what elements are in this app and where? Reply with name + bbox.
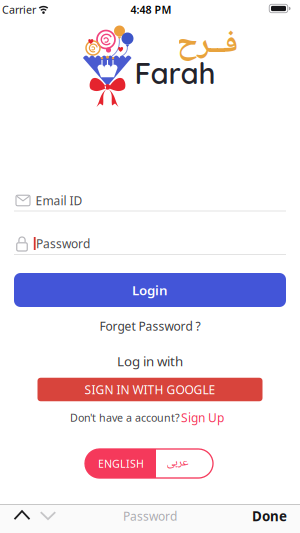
staticText: Password [123, 508, 177, 524]
staticText: Done [252, 507, 287, 525]
staticText: Login [132, 281, 168, 299]
staticText: ENGLISH [98, 456, 144, 471]
staticText: عربى [166, 453, 188, 473]
button[interactable]: Sign Up [181, 409, 224, 425]
staticText: 4:48 PM [130, 2, 171, 17]
staticText: Farah [134, 55, 215, 91]
staticText: Carrier [2, 2, 36, 17]
staticText: Forget Password ? [99, 318, 200, 334]
staticText: Don't have a account? [70, 410, 180, 425]
staticText: SIGN IN WITH GOOGLE [84, 381, 215, 397]
staticText: فــرح [176, 18, 238, 72]
staticText: Sign Up [181, 409, 224, 425]
button[interactable]: Login [14, 273, 286, 307]
staticText: Email ID [35, 192, 82, 208]
staticText: Password [36, 235, 90, 251]
button[interactable]: ENGLISH [85, 449, 213, 478]
button[interactable]: Password [14, 229, 286, 255]
button[interactable]: Forget Password ? [99, 318, 200, 334]
button[interactable]: Next field [41, 512, 55, 520]
button[interactable]: Previous field [14, 510, 29, 520]
button[interactable]: Email ID [14, 185, 286, 212]
staticText: Log in with [117, 352, 183, 370]
button[interactable]: Done [252, 507, 287, 525]
button[interactable]: SIGN IN WITH GOOGLE [37, 378, 262, 401]
